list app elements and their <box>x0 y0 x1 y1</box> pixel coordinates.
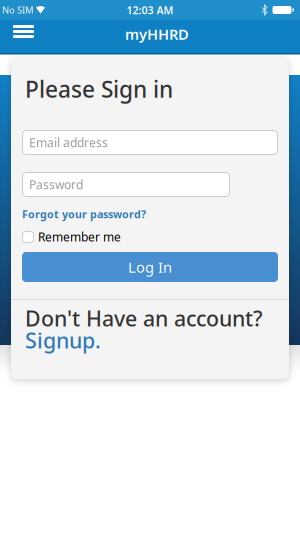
staticText: Email address <box>29 134 108 150</box>
staticText: Don't Have an account? <box>25 304 263 332</box>
button[interactable]: Menu <box>0 30 34 43</box>
staticText: Please Sign in <box>25 74 173 104</box>
staticText: myHHRD <box>125 24 189 44</box>
button[interactable]: Password <box>22 172 230 197</box>
button[interactable]: Email address <box>22 130 278 155</box>
staticText: No SIM <box>2 4 33 16</box>
staticText: 12:03 AM <box>126 3 173 17</box>
staticText: Signup. <box>25 326 101 354</box>
button[interactable]: Log In <box>22 252 278 282</box>
staticText: Remember me <box>38 229 121 245</box>
staticText: Log In <box>128 257 172 277</box>
staticText: Password <box>29 176 83 192</box>
staticText: Forgot your password? <box>22 207 146 221</box>
button[interactable]: Signup. <box>25 326 101 354</box>
button[interactable]: Remember me <box>22 229 121 245</box>
button[interactable]: Forgot your password? <box>22 207 146 221</box>
